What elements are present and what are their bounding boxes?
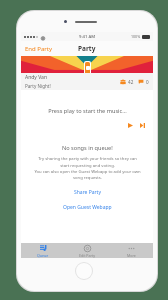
staticText: Edit Party [79,253,96,258]
staticText: Party [78,44,96,53]
button[interactable]: Share Party [68,187,107,198]
button[interactable]: Edit Party [65,243,109,258]
staticText: Party Night! [25,83,51,89]
staticText: Andy Van [25,74,48,81]
staticText: End Party [25,45,52,53]
staticText: 9:41 AM [79,34,96,40]
staticText: 0 [146,79,149,85]
staticText: No songs in queue! [62,144,113,152]
button[interactable]: Queue [21,243,65,258]
button[interactable]: Play [126,121,135,130]
staticText: More [127,253,136,258]
button[interactable]: End Party [21,42,56,56]
staticText: Open Guest Webapp [63,204,112,211]
staticText: 100% [131,34,141,39]
button[interactable]: Open Guest Webapp [57,202,118,213]
button[interactable]: Skip next [138,121,147,130]
staticText: Press play to start the music... [48,107,127,115]
staticText: Try sharing the party with your friends … [34,156,141,180]
staticText: Share Party [74,189,101,196]
staticText: Queue [37,253,49,258]
button[interactable]: More [109,243,153,258]
staticText: 42 [128,79,134,85]
